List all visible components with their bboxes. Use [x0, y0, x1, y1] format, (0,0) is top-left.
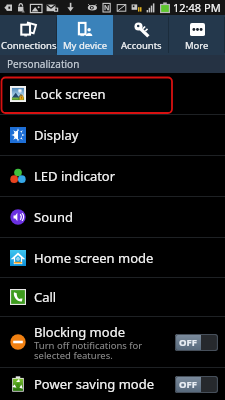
staticText: Turn off notifications for selected feat… — [34, 339, 143, 362]
staticText: Connections — [1, 39, 57, 52]
staticText: 12:48 PM — [173, 0, 221, 15]
button[interactable]: Display — [0, 115, 225, 155]
staticText: LED indicator — [34, 167, 116, 185]
staticText: Display — [34, 126, 79, 144]
staticText: Power saving mode — [34, 375, 155, 393]
staticText: More — [185, 39, 209, 52]
staticText: Sound — [34, 208, 74, 226]
staticText: Blocking mode — [34, 323, 125, 341]
button[interactable]: OFF — [175, 376, 218, 393]
button[interactable]: OFF — [175, 334, 218, 351]
staticText: Accounts — [121, 39, 162, 52]
button[interactable]: Accounts — [113, 15, 169, 55]
staticText: OFF — [179, 336, 197, 349]
staticText: Call — [34, 288, 57, 306]
staticText: My device — [63, 39, 108, 52]
button[interactable]: My device — [57, 15, 113, 55]
button[interactable]: Blocking mode — [0, 317, 225, 367]
button[interactable]: LED indicator — [0, 156, 225, 196]
button[interactable]: More — [169, 15, 225, 55]
button[interactable]: Sound — [0, 197, 225, 237]
button[interactable]: Lock screen — [0, 73, 225, 114]
button[interactable]: Power saving mode — [0, 368, 225, 400]
button[interactable]: Home screen mode — [0, 238, 225, 277]
staticText: OFF — [179, 378, 197, 391]
staticText: Personalization — [7, 57, 80, 71]
staticText: Lock screen — [34, 85, 106, 103]
button[interactable]: Call — [0, 278, 225, 316]
button[interactable]: Connections — [0, 15, 57, 55]
staticText: Home screen mode — [34, 249, 154, 267]
